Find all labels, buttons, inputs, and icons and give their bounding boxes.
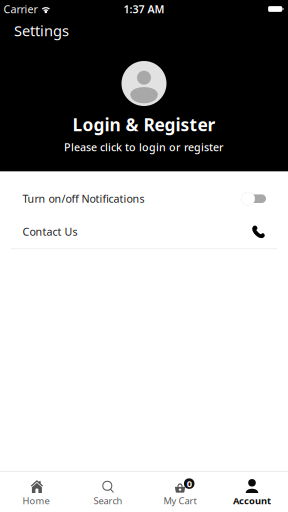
- staticText: Contact Us: [22, 225, 77, 239]
- button[interactable]: Account: [216, 472, 288, 512]
- staticText: My Cart: [163, 494, 196, 507]
- button[interactable]: Search: [72, 472, 144, 512]
- staticText: Settings: [14, 21, 69, 40]
- staticText: 0: [187, 477, 192, 490]
- button[interactable]: Turn on/off Notifications: [0, 182, 288, 215]
- button[interactable]: Contact Us: [0, 215, 288, 248]
- staticText: Search: [93, 494, 122, 507]
- button[interactable]: 0: [144, 472, 216, 512]
- button[interactable]: Home: [0, 472, 72, 512]
- staticText: Turn on/off Notifications: [22, 192, 144, 206]
- staticText: 1:37 AM: [123, 2, 164, 16]
- staticText: Account: [233, 494, 271, 507]
- button[interactable]: Login & Register: [0, 43, 288, 171]
- staticText: Home: [22, 494, 49, 507]
- staticText: Please click to login or register: [64, 140, 224, 154]
- staticText: Login & Register: [72, 113, 215, 136]
- staticText: Carrier: [3, 2, 37, 16]
